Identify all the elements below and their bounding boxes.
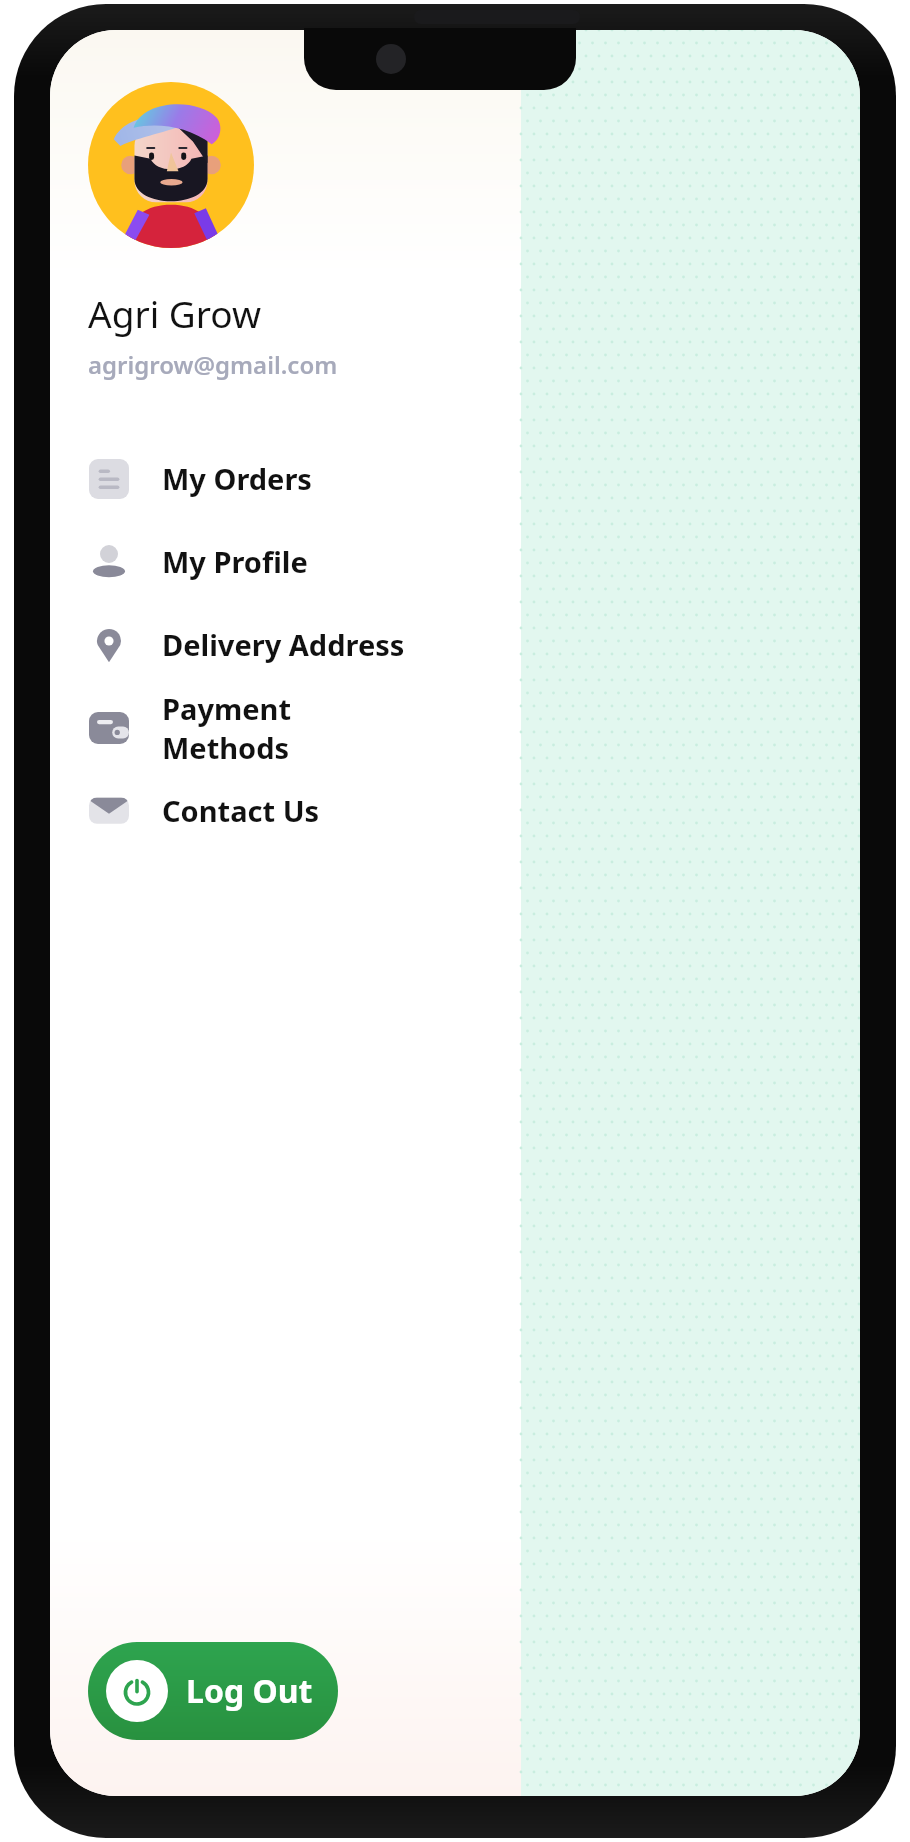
button[interactable] bbox=[88, 82, 254, 248]
staticText: My Orders bbox=[162, 459, 312, 498]
staticText: Log Out bbox=[186, 1669, 313, 1713]
staticText: agrigrow@gmail.com bbox=[88, 348, 338, 381]
staticText: Payment Methods bbox=[162, 689, 418, 767]
staticText: Delivery Address bbox=[162, 625, 405, 664]
button[interactable]: Delivery Address bbox=[88, 603, 418, 686]
button[interactable]: Payment Methods bbox=[88, 686, 418, 769]
staticText: Agri Grow bbox=[88, 288, 262, 338]
button[interactable]: My Profile bbox=[88, 520, 418, 603]
button[interactable]: My Orders bbox=[88, 437, 418, 520]
staticText: Contact Us bbox=[162, 791, 320, 830]
staticText: My Profile bbox=[162, 542, 308, 581]
button[interactable]: Log Out bbox=[88, 1642, 338, 1740]
button[interactable]: Contact Us bbox=[88, 769, 418, 852]
